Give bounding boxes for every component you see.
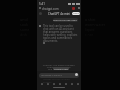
button[interactable]: Tool 2 xyxy=(51,81,56,86)
staticText: Message ChatGPT can make mistakes xyxy=(43,78,77,84)
button[interactable]: Tool 5 xyxy=(69,81,74,86)
staticText: This tool can be used to chat with an AI… xyxy=(43,24,78,43)
staticText: Cookie Prefs xyxy=(54,67,68,70)
button[interactable]: Message ChatGPT xyxy=(39,73,79,78)
button[interactable]: Tool 6 xyxy=(75,81,80,86)
button[interactable]: Tool 0 xyxy=(39,81,44,86)
button[interactable]: what is this app used for xyxy=(53,18,78,22)
staticText: ChatGPT 4o mini xyxy=(48,12,70,16)
staticText: Message ChatGPT xyxy=(41,73,63,76)
staticText: chatgpt.com xyxy=(42,7,59,11)
staticText: Log in xyxy=(73,12,80,15)
button[interactable]: Cookie Prefs xyxy=(54,67,68,70)
button[interactable]: Tool 1 xyxy=(45,81,50,86)
button[interactable]: Tool 3 xyxy=(57,81,62,86)
staticText: See xyxy=(48,67,53,70)
button[interactable]: Log in xyxy=(72,12,80,15)
staticText: what is this app used for xyxy=(53,18,78,22)
staticText: ChatGPT can make mistakes. Check importa… xyxy=(41,63,77,69)
button[interactable]: Tool 4 xyxy=(63,81,68,86)
staticText: 5:41 xyxy=(39,2,45,6)
